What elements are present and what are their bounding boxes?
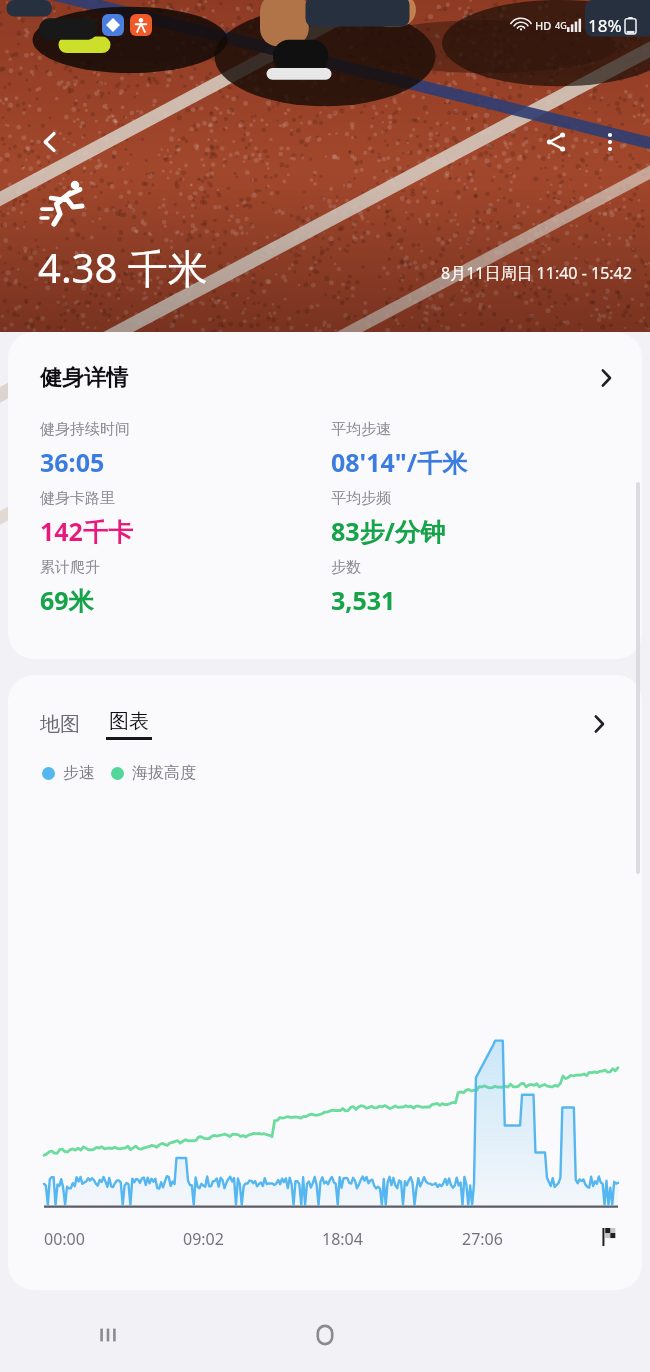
staticText: 图表 bbox=[109, 709, 149, 734]
button[interactable]: Back bbox=[26, 118, 74, 166]
staticText: HD bbox=[535, 18, 552, 33]
staticText: 4G bbox=[555, 19, 567, 31]
staticText: 27:06 bbox=[462, 1228, 602, 1250]
button[interactable]: More options bbox=[586, 118, 634, 166]
staticText: 08'14"/千米 bbox=[331, 445, 468, 479]
button[interactable]: Share bbox=[532, 118, 580, 166]
staticText: 健身卡路里 bbox=[40, 489, 115, 508]
staticText: 18:04 bbox=[322, 1228, 462, 1250]
staticText: 步速 bbox=[63, 763, 95, 783]
staticText: 3,531 bbox=[331, 583, 396, 617]
staticText: 海拔高度 bbox=[132, 763, 196, 783]
staticText: 142千卡 bbox=[40, 514, 133, 548]
button[interactable]: Recent apps bbox=[0, 1298, 216, 1372]
button[interactable]: 图表 bbox=[106, 709, 152, 740]
staticText: 18% bbox=[588, 14, 622, 37]
staticText: 83步/分钟 bbox=[331, 514, 445, 548]
staticText: 09:02 bbox=[183, 1228, 322, 1250]
staticText: 地图 bbox=[40, 712, 80, 737]
staticText: 36:05 bbox=[40, 445, 105, 479]
staticText: 平均步速 bbox=[331, 420, 391, 439]
button[interactable]: Open chart bbox=[582, 707, 616, 741]
staticText: 累计爬升 bbox=[40, 558, 100, 577]
button[interactable]: 健身详情 bbox=[8, 332, 642, 410]
staticText: 步数 bbox=[331, 558, 361, 577]
staticText: 4.38 千米 bbox=[38, 240, 208, 295]
staticText: 健身详情 bbox=[40, 364, 128, 392]
staticText: 00:00 bbox=[44, 1228, 183, 1250]
button[interactable]: Home bbox=[216, 1298, 433, 1372]
button[interactable]: 地图 bbox=[40, 712, 80, 737]
staticText: 8月11日周日 11:40 - 15:42 bbox=[441, 262, 632, 284]
staticText: 平均步频 bbox=[331, 489, 391, 508]
staticText: 健身持续时间 bbox=[40, 420, 130, 439]
staticText: 69米 bbox=[40, 583, 94, 617]
